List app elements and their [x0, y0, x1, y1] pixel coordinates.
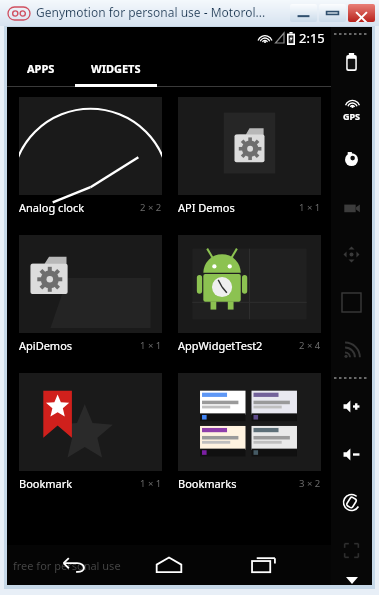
button[interactable]: ID — [331, 278, 372, 326]
button[interactable]: Analog clock — [19, 97, 162, 215]
button[interactable]: Bookmark — [19, 373, 162, 491]
button[interactable]: Volume down — [331, 430, 372, 478]
button[interactable]: Rotate — [331, 478, 372, 526]
button[interactable]: WIDGETS — [75, 49, 157, 87]
staticText: 2 × 2 — [140, 201, 162, 214]
button[interactable]: Battery — [331, 38, 372, 86]
button[interactable]: GPS — [331, 86, 372, 134]
staticText: Bookmarks — [178, 476, 237, 491]
staticText: 1 × 1 — [140, 477, 162, 490]
button[interactable]: Recent apps — [236, 546, 292, 584]
staticText: Genymotion for personal use - Motorol... — [36, 4, 266, 20]
staticText: AppWidgetTest2 — [178, 338, 263, 353]
staticText: 2 × 4 — [299, 339, 321, 352]
staticText: GPS — [343, 110, 361, 122]
staticText: 1 × 1 — [299, 201, 321, 214]
staticText: APPS — [27, 61, 55, 76]
staticText: ApiDemos — [19, 338, 73, 353]
staticText: free for personal use — [13, 558, 121, 573]
button[interactable]: Maximize — [319, 4, 346, 22]
staticText: WIDGETS — [91, 61, 141, 76]
button[interactable]: API Demos — [178, 97, 321, 215]
button[interactable]: Move — [331, 230, 372, 278]
button[interactable]: Camera — [331, 134, 372, 182]
button[interactable]: ApiDemos — [19, 235, 162, 353]
staticText: API Demos — [178, 200, 235, 215]
button[interactable]: Video — [331, 182, 372, 230]
button[interactable]: Minimize — [290, 4, 317, 22]
staticText: 1 × 1 — [140, 339, 162, 352]
button[interactable]: Back — [46, 546, 102, 584]
button[interactable]: APPS — [7, 49, 75, 87]
button[interactable]: Home — [141, 546, 197, 584]
button[interactable]: Network — [331, 326, 372, 374]
button[interactable]: Close — [348, 4, 375, 22]
staticText: Bookmark — [19, 476, 73, 491]
staticText: Analog clock — [19, 200, 85, 215]
staticText: 3 × 2 — [299, 477, 321, 490]
button[interactable]: More — [331, 574, 372, 585]
button[interactable]: Bookmarks — [178, 373, 321, 491]
staticText: 2:15 — [299, 29, 325, 47]
button[interactable]: Resize — [331, 526, 372, 574]
button[interactable]: Volume up — [331, 382, 372, 430]
button[interactable]: AppWidgetTest2 — [178, 235, 321, 353]
